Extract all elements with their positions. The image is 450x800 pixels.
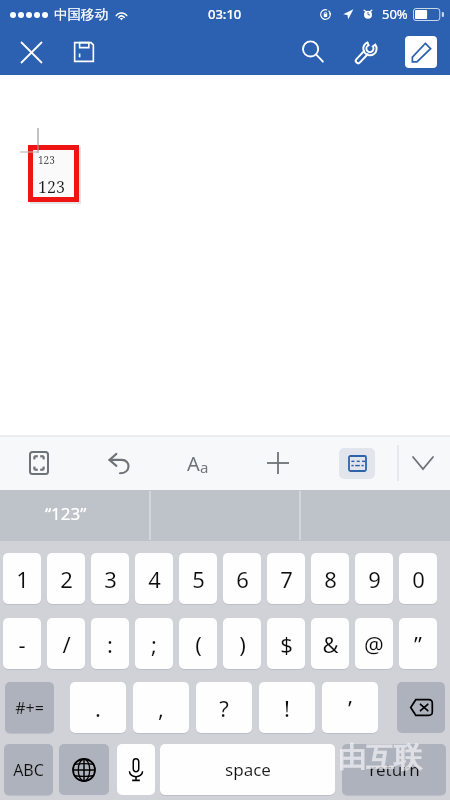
button[interactable]: Change language [59,744,109,795]
staticText: / [62,629,71,659]
staticText: 8 [324,564,337,594]
button[interactable]: - [3,618,41,669]
button[interactable]: space [160,744,335,795]
staticText: 6 [236,564,249,594]
staticText: 03:10 [208,5,242,23]
button[interactable]: / [47,618,85,669]
button[interactable]: 9 [355,553,393,604]
button[interactable]: Format text [177,442,219,484]
staticText: 50% [382,5,408,23]
staticText: ? [219,693,229,723]
button[interactable]: Tools [345,31,387,73]
button[interactable]: Add [257,442,299,484]
button[interactable]: $ [267,618,305,669]
button[interactable]: Undo [99,442,141,484]
button[interactable]: Select [18,442,60,484]
staticText: ( [195,629,202,659]
staticText: ’ [348,693,352,723]
button[interactable]: ! [259,682,315,733]
button[interactable]: 6 [223,553,261,604]
staticText: 4 [148,564,161,594]
staticText: : [107,629,113,659]
button[interactable]: 0 [399,553,437,604]
staticText: #+= [15,697,44,719]
button[interactable]: return [342,744,446,795]
staticText: 123 [38,176,65,197]
staticText: - [18,629,26,659]
staticText: a [200,457,209,477]
staticText: , [158,693,164,723]
button[interactable]: Hide keyboard [402,442,444,484]
staticText: “123” [45,502,87,525]
staticText: 5 [192,564,205,594]
staticText: 1 [16,564,29,594]
button[interactable]: ( [179,618,217,669]
staticText: 123 [38,153,55,167]
button[interactable]: ) [223,618,261,669]
button[interactable]: Save [63,31,105,73]
button[interactable]: ABC [4,744,53,795]
button[interactable]: , [133,682,189,733]
staticText: 7 [280,564,293,594]
button[interactable]: 8 [311,553,349,604]
staticText: & [322,629,339,659]
staticText: @ [364,629,384,659]
button[interactable]: : [91,618,129,669]
button[interactable]: 3 [91,553,129,604]
button[interactable]: Search [292,31,334,73]
button[interactable]: @ [355,618,393,669]
button[interactable]: 7 [267,553,305,604]
button[interactable]: Close [10,31,52,73]
staticText: ) [239,629,246,659]
staticText: $ [280,629,293,659]
button[interactable]: & [311,618,349,669]
button[interactable]: ? [196,682,252,733]
button[interactable]: Keyboard [339,448,375,479]
staticText: ” [414,629,422,659]
button[interactable]: 1 [3,553,41,604]
button[interactable]: Edit [405,36,437,68]
staticText: ABC [13,759,44,781]
staticText: ! [284,693,290,723]
staticText: space [225,758,271,781]
button[interactable]: 5 [179,553,217,604]
button[interactable]: . [70,682,126,733]
button[interactable]: ” [399,618,437,669]
button[interactable]: #+= [5,682,54,733]
staticText: A [187,450,200,477]
button[interactable]: 2 [47,553,85,604]
staticText: 3 [104,564,117,594]
button[interactable]: Dictate [117,744,155,795]
staticText: return [369,758,420,781]
button[interactable]: Delete [397,682,445,733]
staticText: 由互联 [338,740,422,775]
staticText: ; [151,629,157,659]
staticText: 中国移动 [54,6,108,23]
staticText: 2 [60,564,73,594]
button[interactable]: ’ [322,682,378,733]
staticText: 0 [412,564,425,594]
button[interactable]: ; [135,618,173,669]
button[interactable]: 4 [135,553,173,604]
staticText: 9 [368,564,381,594]
staticText: . [95,693,101,723]
